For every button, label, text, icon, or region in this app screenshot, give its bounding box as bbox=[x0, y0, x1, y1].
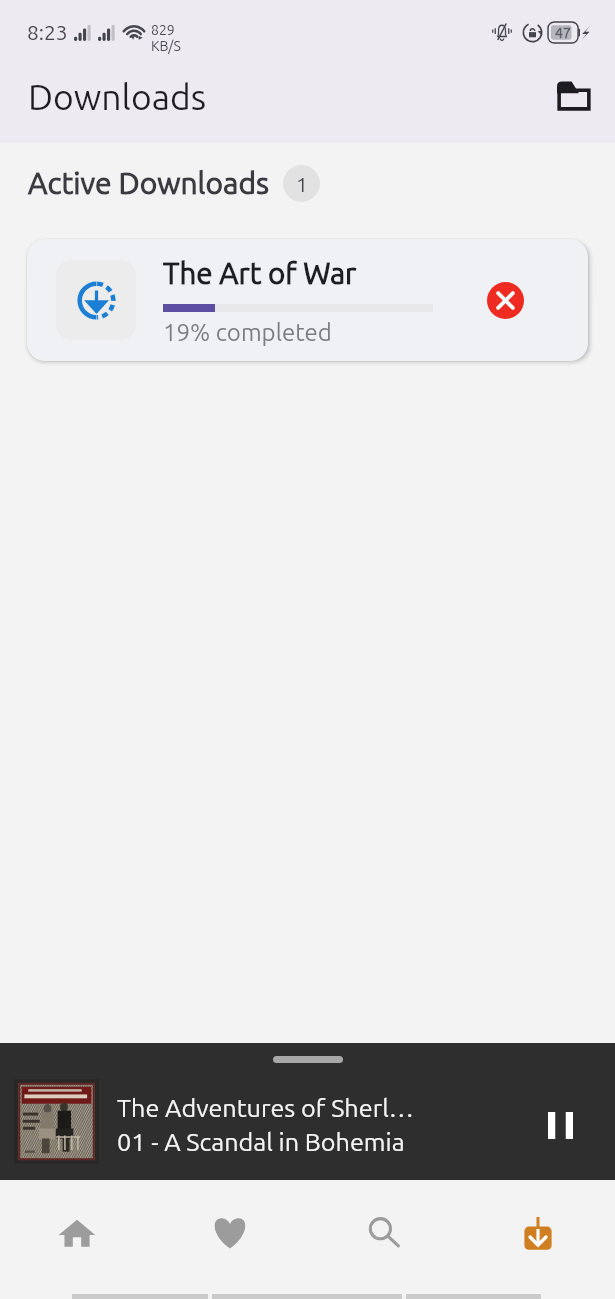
staticText: 47 bbox=[555, 25, 571, 41]
staticText: 01 - A Scandal in Bohemia bbox=[117, 1128, 405, 1156]
button[interactable]: Favorites bbox=[153, 1180, 307, 1270]
staticText: KB/S bbox=[151, 38, 181, 54]
staticText: 1 bbox=[296, 172, 308, 196]
staticText: 829 bbox=[151, 22, 175, 38]
button[interactable]: Pause bbox=[527, 1092, 593, 1158]
staticText: Active Downloads bbox=[28, 166, 269, 200]
staticText: Downloads bbox=[28, 77, 207, 117]
button[interactable]: The Art of War bbox=[27, 239, 588, 361]
button[interactable]: Downloads bbox=[461, 1180, 615, 1270]
button[interactable]: Home bbox=[0, 1180, 153, 1270]
button[interactable]: Search bbox=[307, 1180, 461, 1270]
button[interactable]: Open folder bbox=[549, 72, 599, 122]
staticText: The Art of War bbox=[163, 257, 357, 290]
button[interactable]: The Adventures of Sherl… bbox=[0, 1043, 615, 1180]
staticText: 8:23 bbox=[27, 20, 68, 44]
button[interactable]: Cancel download bbox=[479, 274, 531, 326]
staticText: 19% completed bbox=[163, 319, 332, 346]
staticText: The Adventures of Sherl… bbox=[117, 1094, 414, 1122]
